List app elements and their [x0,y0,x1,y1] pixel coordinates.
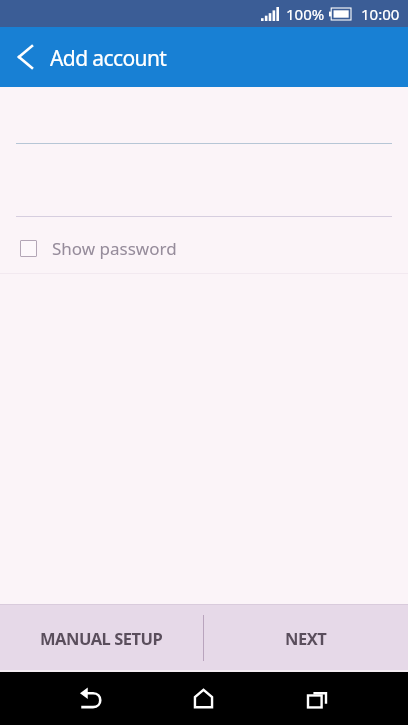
staticText: Add account [50,44,167,73]
staticText: 100% [286,4,325,24]
staticText: MANUAL SETUP [40,627,163,649]
button[interactable]: Email address [0,103,408,144]
staticText: 10:00 [361,4,400,24]
button[interactable]: Home [173,672,233,725]
button[interactable]: Show password [0,230,408,266]
staticText: NEXT [285,627,327,649]
button[interactable]: MANUAL SETUP [0,604,203,671]
button[interactable]: Back [60,672,120,725]
staticText: Show password [52,237,177,260]
button[interactable]: Password [0,176,408,217]
button[interactable]: Back [0,32,50,82]
button[interactable]: NEXT [204,604,408,671]
button[interactable]: Recent apps [287,672,347,725]
